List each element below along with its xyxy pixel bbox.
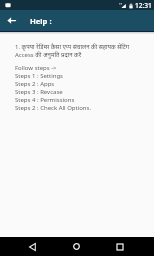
staticText: Steps 2 : Check All Options.: [15, 104, 92, 112]
staticText: Steps 4 : Permissions: [15, 96, 75, 104]
button[interactable]: Back: [0, 10, 22, 31]
staticText: Steps 1 : Settings: [15, 72, 63, 80]
staticText: Steps 3 : Revcase: [15, 88, 63, 96]
staticText: 1. कृपया रेडिंग्स कैसा एप्प संचालन की सह…: [15, 43, 148, 59]
button[interactable]: Recents: [98, 237, 142, 256]
button[interactable]: Back: [10, 237, 54, 256]
button[interactable]: Home: [54, 237, 98, 256]
staticText: Follow steps ->: [15, 64, 57, 72]
staticText: Steps 2 : Apps: [15, 80, 55, 88]
staticText: Help :: [30, 16, 52, 26]
staticText: 12:31: [135, 1, 152, 10]
